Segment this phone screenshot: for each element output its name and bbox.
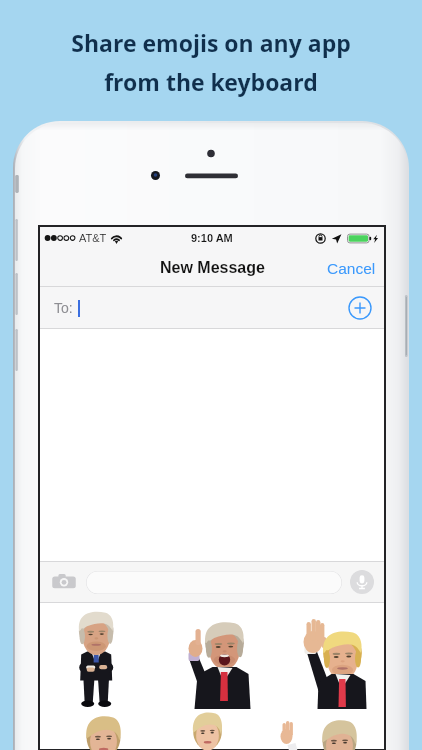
button[interactable]: Emoji sticker [269,603,384,676]
staticText: Cancel [327,260,376,277]
staticText: AT&T [79,232,107,244]
staticText: New Message [160,259,265,277]
button[interactable]: Camera [50,568,78,596]
button[interactable]: Emoji sticker [269,676,384,749]
button[interactable]: Emoji sticker [40,676,154,749]
staticText: from the keyboard [104,66,318,97]
button[interactable]: Dictation [350,570,374,594]
staticText: To: [54,300,73,316]
button[interactable]: Emoji sticker [40,603,154,676]
button[interactable]: Emoji sticker [154,603,269,676]
button[interactable]: Add contact [348,296,372,320]
button[interactable] [86,571,342,594]
staticText: Share emojis on any app [71,27,351,58]
button[interactable]: Cancel [315,254,384,283]
staticText: 9:10 AM [191,232,233,244]
button[interactable]: Emoji sticker [154,676,269,749]
